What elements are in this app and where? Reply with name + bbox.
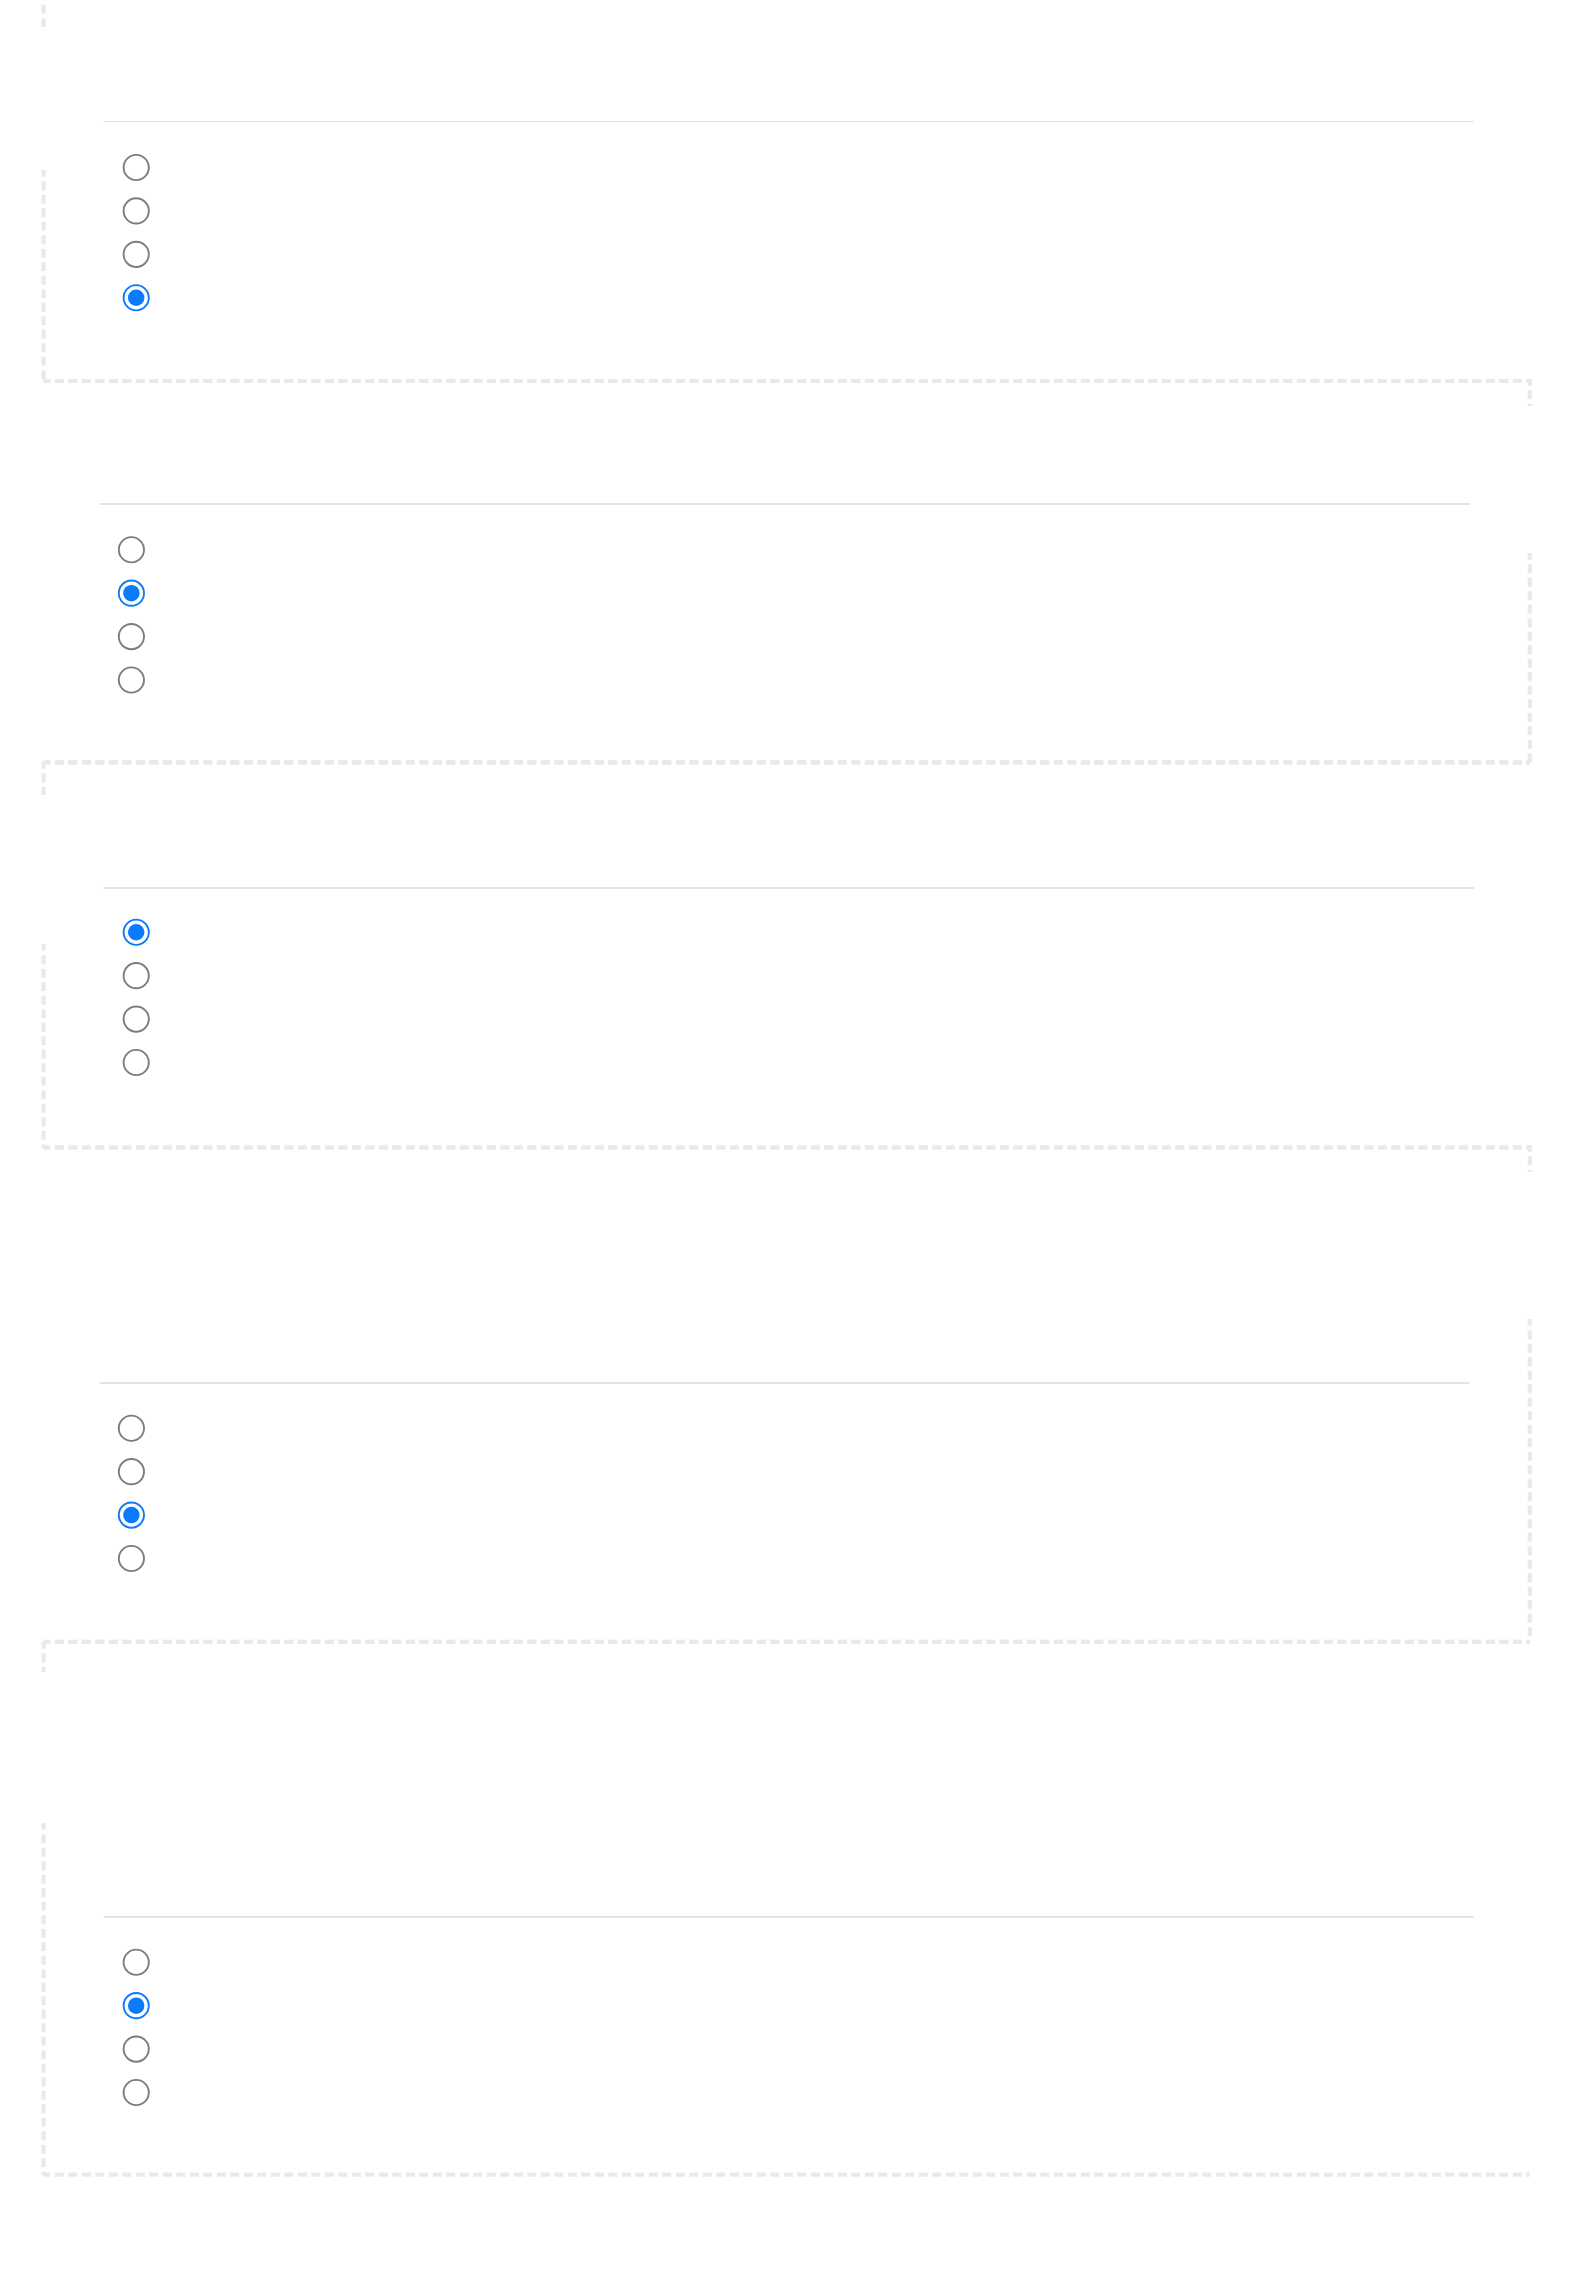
button[interactable]: Question 1, option 4 [114,276,158,320]
button[interactable]: Question 1, option 2 [114,189,158,233]
button[interactable]: Question 4, option 1 [109,1406,153,1450]
button[interactable]: Question 4, option 4 [109,1537,153,1581]
button[interactable]: Question 1, option 3 [114,232,158,276]
button[interactable]: Question 3, option 1 [114,910,158,954]
button[interactable]: Question 5, option 3 [114,2027,158,2071]
button[interactable]: Question 2, option 4 [109,658,153,702]
button[interactable]: Question 2, option 3 [109,615,153,659]
button[interactable]: Question 4, option 2 [109,1450,153,1494]
button[interactable]: Question 1, option 1 [114,146,158,190]
button[interactable]: Question 3, option 3 [114,997,158,1041]
button[interactable]: Question 4, option 3 [109,1493,153,1537]
button[interactable]: Question 5, option 1 [114,1940,158,1984]
button[interactable]: Question 3, option 2 [114,954,158,998]
button[interactable]: Question 3, option 4 [114,1041,158,1085]
button[interactable]: Question 2, option 1 [109,528,153,572]
button[interactable]: Question 5, option 4 [114,2071,158,2115]
button[interactable]: Question 5, option 2 [114,1984,158,2028]
button[interactable]: Question 2, option 2 [109,571,153,615]
